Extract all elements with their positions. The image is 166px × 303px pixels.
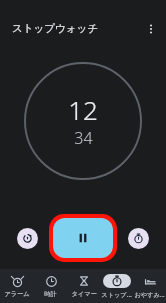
staticText: ストップウォッチ bbox=[12, 22, 98, 35]
staticText: 34 bbox=[74, 127, 93, 149]
staticText: 12 bbox=[68, 92, 98, 127]
button[interactable]: ストップ… bbox=[100, 269, 133, 303]
staticText: タイマー bbox=[71, 290, 97, 298]
staticText: 時計 bbox=[44, 290, 57, 298]
staticText: おやすみ… bbox=[134, 290, 165, 298]
button[interactable]: 時計 bbox=[34, 269, 67, 303]
button[interactable]: Lap bbox=[128, 228, 149, 249]
staticText: アラーム bbox=[4, 290, 30, 298]
button[interactable]: アラーム bbox=[0, 269, 34, 303]
button[interactable]: More options bbox=[140, 18, 162, 40]
button[interactable]: タイマー bbox=[67, 269, 100, 303]
button[interactable]: Pause bbox=[53, 218, 113, 258]
button[interactable]: Reset bbox=[17, 228, 38, 249]
button[interactable]: おやすみ… bbox=[133, 269, 166, 303]
staticText: ストップ… bbox=[101, 290, 132, 298]
